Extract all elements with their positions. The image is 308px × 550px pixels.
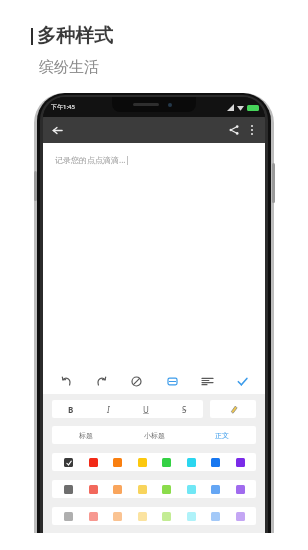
- staticText: 下午1:45: [51, 103, 75, 111]
- button[interactable]: Color 5: [158, 481, 174, 497]
- button[interactable]: Clear formatting: [124, 369, 148, 393]
- button[interactable]: Color 4: [134, 481, 150, 497]
- staticText: U: [143, 404, 149, 415]
- button[interactable]: Color 3: [109, 454, 125, 470]
- staticText: S: [182, 404, 187, 415]
- staticText: 记录您的点点滴滴...|: [55, 154, 130, 165]
- button[interactable]: Back: [48, 121, 66, 139]
- button[interactable]: Color 8: [232, 508, 248, 524]
- staticText: B: [68, 404, 74, 415]
- button[interactable]: 标题: [52, 426, 120, 444]
- button[interactable]: Done: [230, 369, 254, 393]
- staticText: 小标题: [144, 431, 165, 440]
- button[interactable]: Color 1: [60, 481, 76, 497]
- button[interactable]: Share: [225, 121, 243, 139]
- staticText: 正文: [215, 431, 229, 440]
- button[interactable]: Color 5: [158, 454, 174, 470]
- button[interactable]: Redo: [89, 369, 113, 393]
- button[interactable]: Color 5: [158, 508, 174, 524]
- button[interactable]: S: [165, 400, 203, 418]
- button[interactable]: Color 7: [207, 454, 223, 470]
- button[interactable]: Color 2: [85, 508, 101, 524]
- button[interactable]: Color 4: [134, 508, 150, 524]
- button[interactable]: Color 6: [183, 481, 199, 497]
- button[interactable]: Color 3: [109, 508, 125, 524]
- button[interactable]: Highlight: [210, 400, 256, 418]
- button[interactable]: B: [52, 400, 89, 418]
- button[interactable]: Color 7: [207, 508, 223, 524]
- button[interactable]: More options: [243, 121, 261, 139]
- button[interactable]: I: [89, 400, 127, 418]
- button[interactable]: Color 7: [207, 481, 223, 497]
- staticText: 多种样式: [37, 24, 113, 48]
- staticText: I: [107, 404, 110, 415]
- button[interactable]: Color 8: [232, 454, 248, 470]
- staticText: 标题: [79, 431, 93, 440]
- button[interactable]: Insert box: [160, 369, 184, 393]
- button[interactable]: Color 3: [109, 481, 125, 497]
- button[interactable]: Color 6: [183, 454, 199, 470]
- button[interactable]: 小标题: [120, 426, 188, 444]
- button[interactable]: Color 8: [232, 481, 248, 497]
- button[interactable]: Color 2: [85, 454, 101, 470]
- button[interactable]: Undo: [54, 369, 78, 393]
- button[interactable]: Color 6: [183, 508, 199, 524]
- button[interactable]: Color 2: [85, 481, 101, 497]
- button[interactable]: Color 4: [134, 454, 150, 470]
- button[interactable]: 正文: [188, 426, 256, 444]
- button[interactable]: Align: [195, 369, 219, 393]
- button[interactable]: Color 1: [60, 454, 76, 470]
- button[interactable]: U: [127, 400, 165, 418]
- staticText: 缤纷生活: [39, 58, 99, 77]
- button[interactable]: Color 1: [60, 508, 76, 524]
